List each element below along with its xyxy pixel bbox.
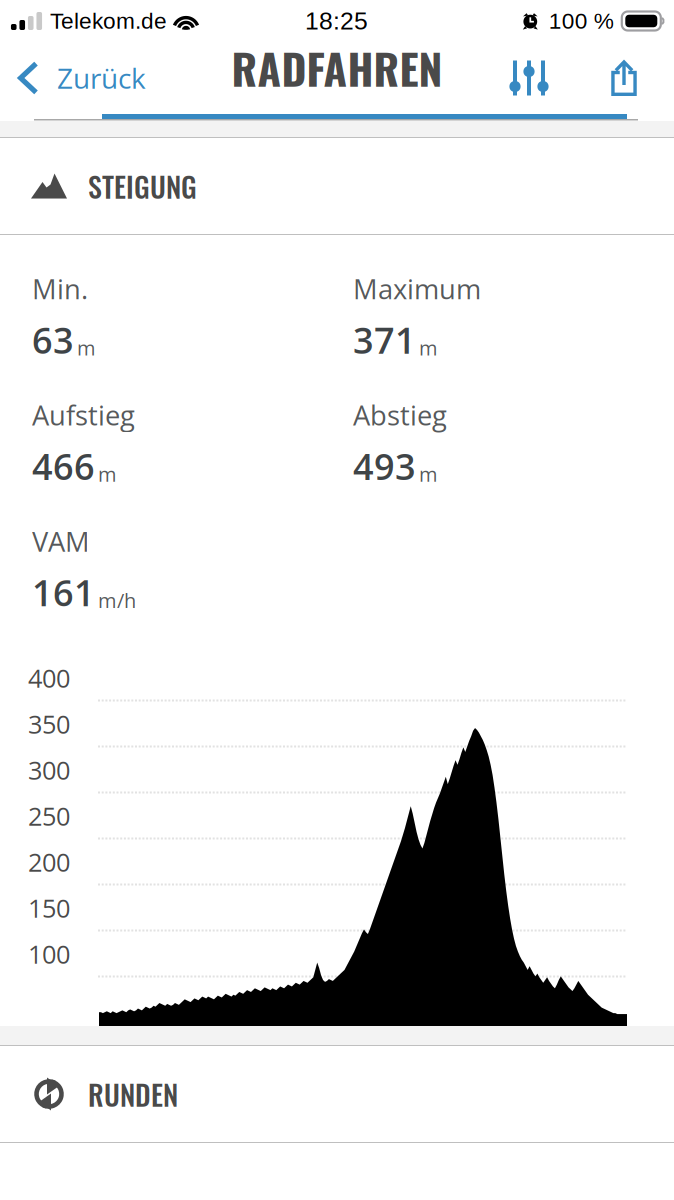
staticText: STEIGUNG [88,165,197,207]
staticText: 150 [28,891,70,925]
staticText: Zurück [57,59,146,97]
staticText: 100 [28,937,70,971]
staticText: 350 [28,707,70,741]
staticText: m [419,334,438,361]
button[interactable]: Zurück [0,42,158,114]
staticText: VAM [32,522,90,560]
staticText: RADFAHREN [231,36,442,99]
staticText: RUNDEN [88,1073,178,1115]
staticText: 371 [353,315,416,364]
staticText: 18:25 [305,7,368,35]
staticText: 400 [28,661,70,695]
staticText: 300 [28,753,70,787]
staticText: m [98,460,117,487]
button[interactable]: RUNDEN [0,1046,674,1142]
staticText: 250 [28,799,70,833]
staticText: m [77,334,96,361]
staticText: 63 [32,315,74,364]
staticText: 493 [353,441,416,490]
staticText: Telekom.de [50,8,167,34]
staticText: m [419,460,438,487]
staticText: Aufstieg [32,396,135,433]
staticText: 161 [32,568,95,617]
staticText: 200 [28,845,70,879]
button[interactable]: Teilen [603,42,645,114]
staticText: m/h [98,586,136,614]
button[interactable]: STEIGUNG [0,138,674,234]
staticText: 466 [32,441,95,490]
staticText: Maximum [353,270,481,307]
staticText: Abstieg [353,396,447,433]
staticText: Min. [32,270,88,307]
staticText: 100 % [549,8,614,34]
button[interactable]: Einstellungen [503,42,555,114]
